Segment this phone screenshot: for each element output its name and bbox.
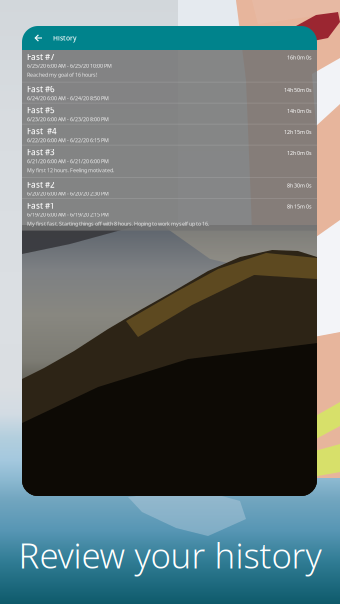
staticText: 6/22/20 6:00 AM - 6/22/20 6:15 PM [27, 136, 109, 144]
staticText: 6/25/20 6:00 AM - 6/25/20 10:00 PM [27, 62, 112, 69]
staticText: History [53, 34, 77, 42]
button[interactable]: Fast #7 [22, 50, 317, 82]
staticText: Fast #1 [27, 200, 55, 211]
button[interactable]: Fast #1 [22, 199, 317, 231]
button[interactable]: Fast #3 [22, 145, 317, 177]
staticText: 8h 30m 0s [287, 182, 312, 189]
staticText: Reached my goal of 16 hours! [27, 71, 97, 78]
staticText: Fast #5 [27, 105, 55, 115]
staticText: 8h 15m 0s [287, 203, 312, 210]
staticText: 16h 0m 0s [287, 54, 312, 61]
staticText: 6/21/20 6:00 AM - 6/21/20 6:00 PM [27, 157, 109, 165]
staticText: 6/24/20 6:00 AM - 6/24/20 8:50 PM [27, 94, 109, 102]
staticText: 6/23/20 6:00 AM - 6/23/20 8:00 PM [27, 115, 109, 123]
staticText: 6/19/20 6:00 AM - 6/19/20 2:15 PM [27, 211, 109, 218]
button[interactable]: Fast #6 [22, 82, 317, 103]
staticText: Fast #6 [27, 84, 55, 94]
button[interactable]: Back [22, 26, 48, 50]
staticText: Fast #7 [27, 51, 55, 62]
staticText: Fast #3 [27, 147, 55, 157]
button[interactable]: Fast #5 [22, 103, 317, 124]
staticText: 12h 0m 0s [287, 149, 312, 156]
staticText: Fast #4 [27, 126, 57, 136]
staticText: 14h 0m 0s [287, 107, 312, 114]
staticText: My first 12 hours. Feeling motivated. [27, 167, 114, 174]
staticText: 14h 50m 0s [284, 86, 312, 93]
button[interactable]: Fast #2 [22, 178, 317, 198]
staticText: 12h 15m 0s [284, 128, 312, 135]
staticText: Review your history [18, 532, 321, 578]
staticText: My first fast. Starting things off with … [27, 220, 209, 227]
staticText: Fast #2 [27, 179, 55, 190]
button[interactable]: Fast #4 [22, 124, 317, 145]
staticText: 6/20/20 6:00 AM - 6/20/20 2:30 PM [27, 190, 109, 197]
